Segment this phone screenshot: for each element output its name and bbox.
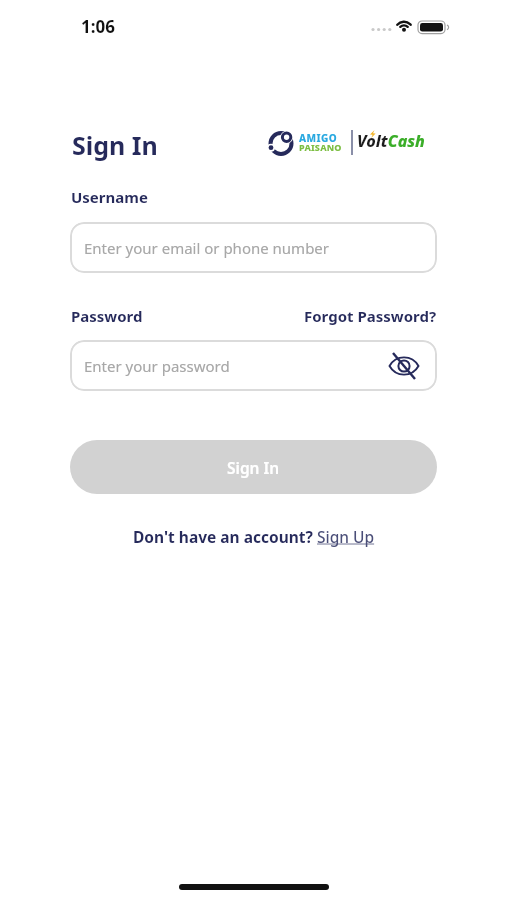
- button[interactable]: Enter your email or phone number: [70, 222, 437, 273]
- staticText: Username: [71, 187, 148, 207]
- button[interactable]: [389, 352, 419, 380]
- staticText: AMIGO: [299, 131, 337, 145]
- staticText: Enter your password: [84, 356, 230, 376]
- staticText: VoltCash: [357, 130, 425, 152]
- button[interactable]: Sign Up: [317, 526, 375, 547]
- staticText: Sign In: [227, 457, 280, 478]
- staticText: 1:06: [81, 15, 115, 38]
- staticText: Don't have an account?: [133, 526, 317, 547]
- button[interactable]: Forgot Password?: [304, 306, 437, 326]
- staticText: PAISANO: [299, 141, 342, 153]
- staticText: Sign In: [72, 128, 158, 162]
- button[interactable]: Enter your password: [70, 340, 437, 391]
- button[interactable]: Sign In: [70, 440, 437, 494]
- staticText: Password: [71, 306, 143, 326]
- staticText: Enter your email or phone number: [84, 238, 330, 258]
